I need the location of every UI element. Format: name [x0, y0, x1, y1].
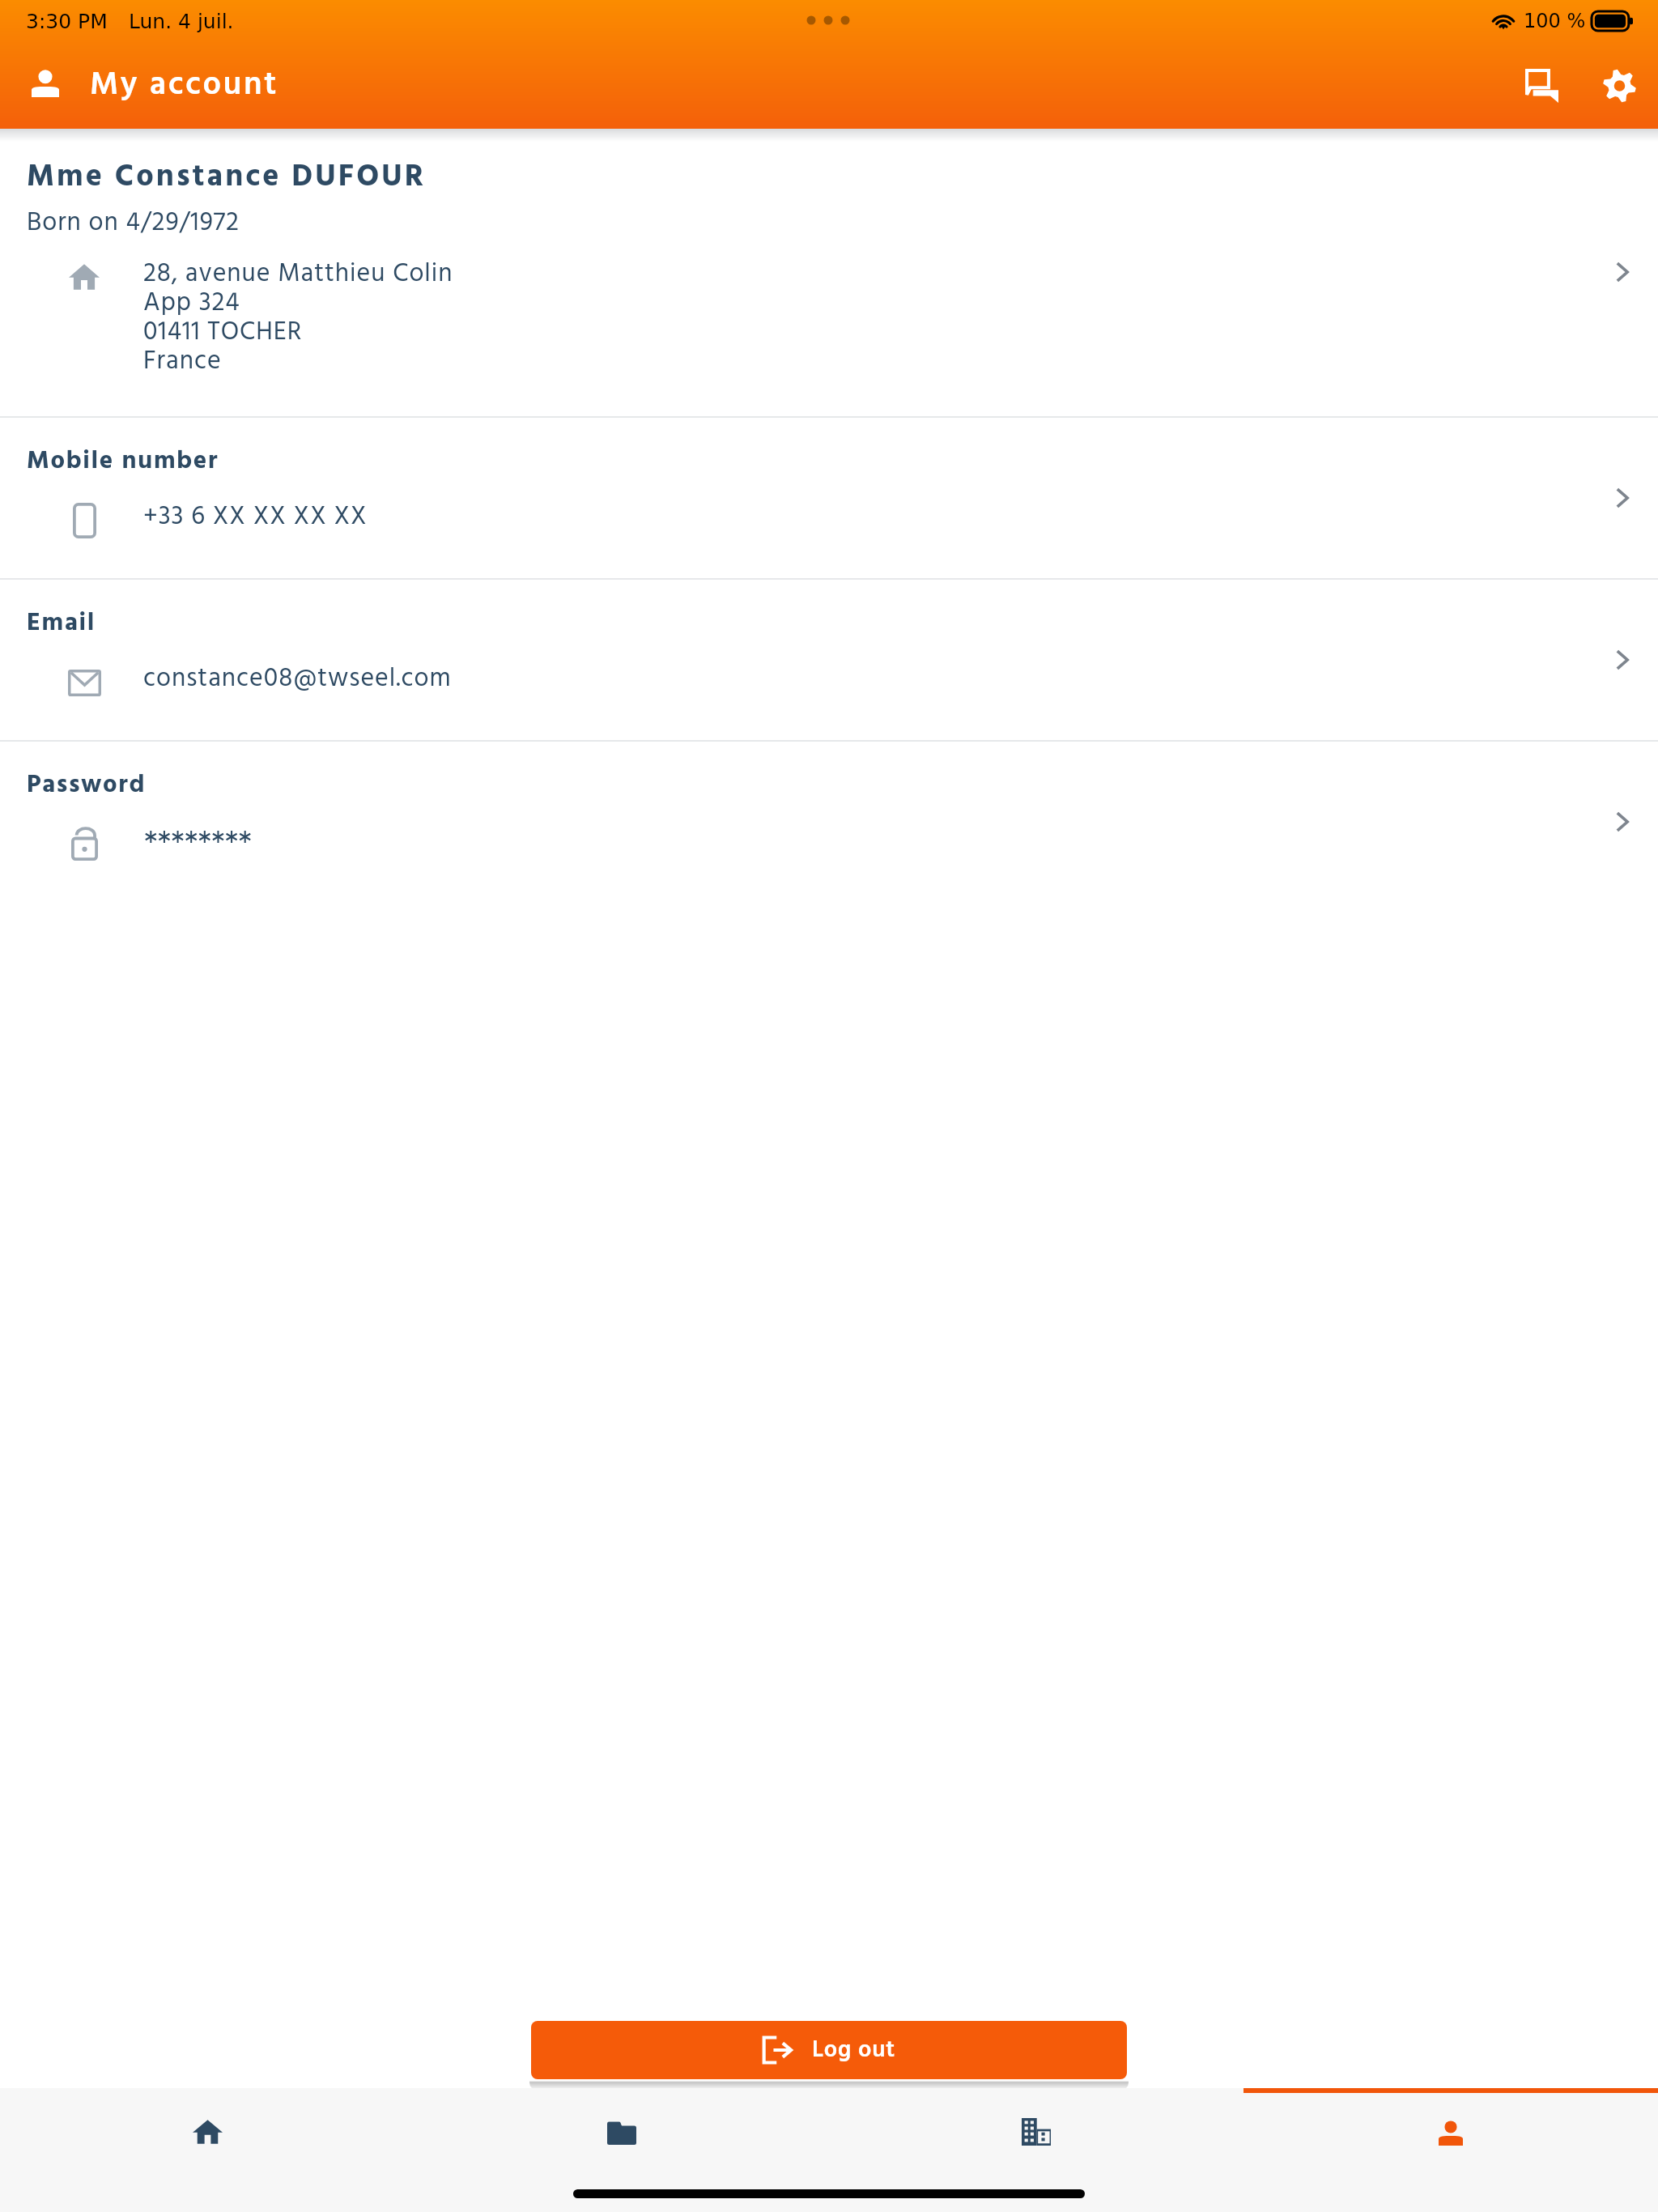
staticText: constance08@twseel.com	[143, 658, 452, 700]
staticText: My account	[90, 60, 279, 112]
staticText: Password	[27, 765, 147, 806]
staticText: Born on 4/29/1972	[27, 202, 240, 244]
staticText: Mme Constance DUFOUR	[27, 153, 427, 202]
button[interactable]: Messages	[1503, 42, 1580, 129]
button[interactable]: Address	[0, 129, 1658, 416]
button[interactable]: My account	[1243, 2088, 1658, 2212]
staticText: Log out	[812, 2031, 896, 2069]
button[interactable]: Company	[829, 2088, 1243, 2212]
button[interactable]: Mobile number	[0, 418, 1658, 578]
button[interactable]: Password	[0, 742, 1658, 902]
staticText: Email	[27, 603, 96, 644]
button[interactable]: Settings	[1580, 42, 1658, 129]
button[interactable]: Log out	[531, 2021, 1127, 2079]
staticText: Mobile number	[27, 441, 219, 482]
staticText: Lun. 4 juil.	[129, 10, 234, 33]
staticText: 100 %	[1524, 10, 1586, 32]
staticText: +33 6 XX XX XX XX	[143, 496, 368, 538]
button[interactable]: Home	[0, 2088, 414, 2212]
button[interactable]: Email	[0, 580, 1658, 740]
staticText: 28, avenue Matthieu Colin App 324 01411 …	[143, 253, 453, 382]
button[interactable]: Documents	[414, 2088, 829, 2212]
staticText: 3:30 PM	[26, 10, 108, 33]
